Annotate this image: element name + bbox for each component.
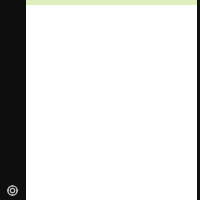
button[interactable]: Settings — [7, 185, 18, 196]
